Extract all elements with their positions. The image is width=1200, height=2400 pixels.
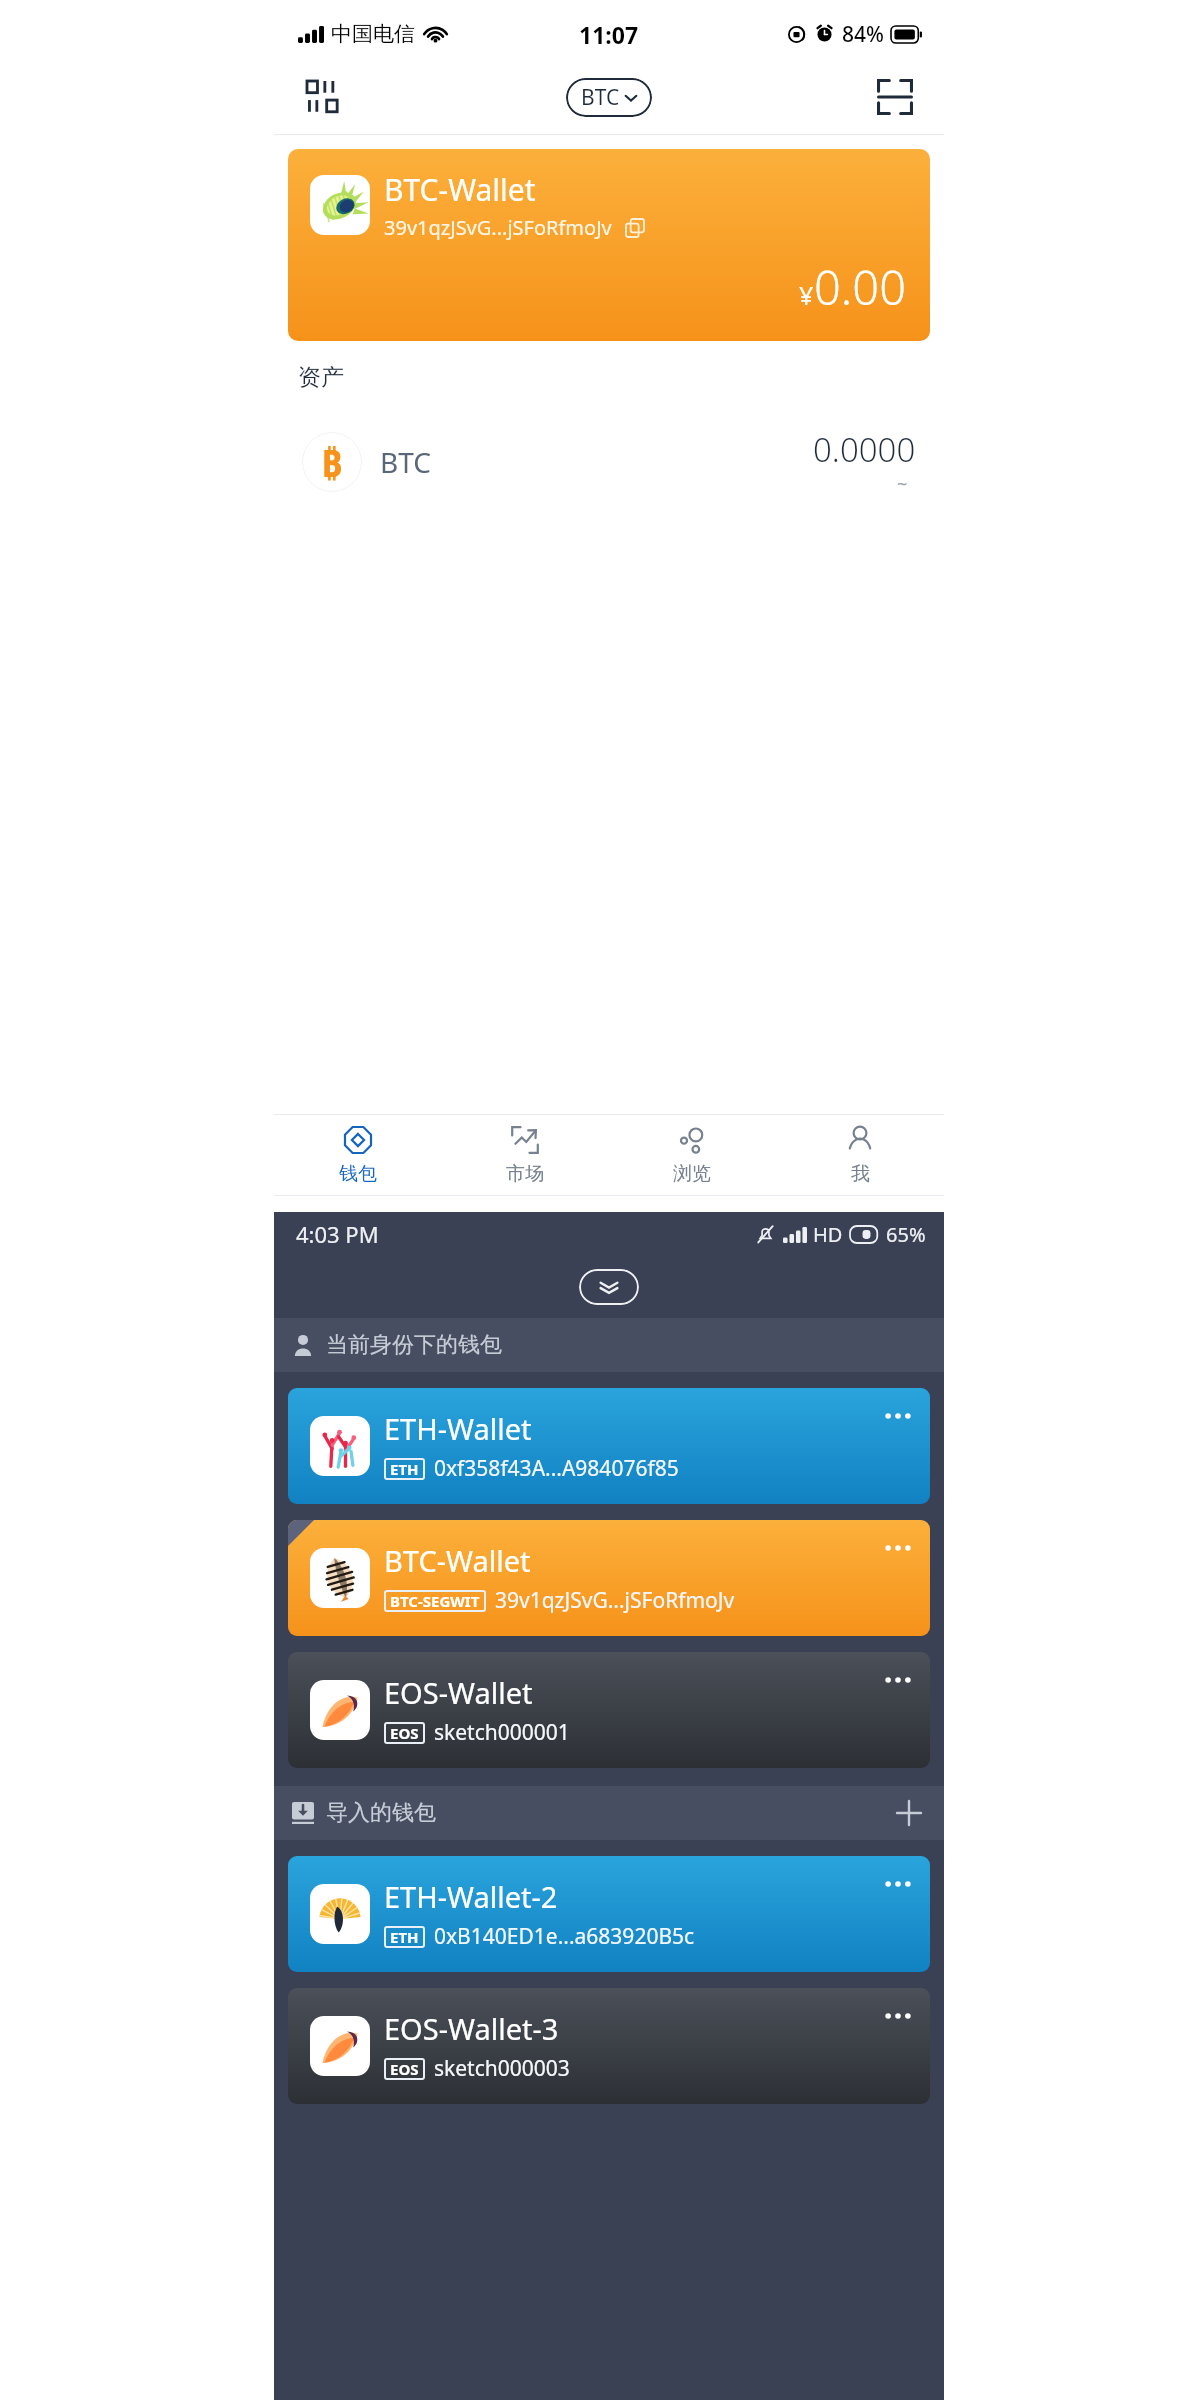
- staticText: BTC: [581, 83, 620, 112]
- staticText: ¥: [799, 278, 814, 312]
- staticText: ~: [897, 472, 908, 497]
- staticText: sketch000001: [434, 1718, 570, 1747]
- button[interactable]: EOS-Wallet: [288, 1652, 930, 1768]
- staticText: EOS: [390, 2059, 419, 2079]
- button[interactable]: More options: [876, 1526, 920, 1570]
- button[interactable]: Add wallet: [892, 1796, 926, 1830]
- button[interactable]: 当前身份下的钱包: [274, 1318, 944, 1372]
- button[interactable]: More options: [876, 1862, 920, 1906]
- staticText: 0xf358f43A...A984076f85: [434, 1454, 679, 1483]
- staticText: 导入的钱包: [326, 1799, 436, 1827]
- staticText: 84%: [842, 20, 884, 49]
- staticText: ETH-Wallet-2: [384, 1877, 558, 1916]
- staticText: BTC-Wallet: [384, 169, 536, 210]
- button[interactable]: 导入的钱包: [274, 1786, 944, 1840]
- button[interactable]: ETH-Wallet: [288, 1388, 930, 1504]
- button[interactable]: Scan QR code: [868, 70, 922, 124]
- staticText: 市场: [506, 1162, 544, 1186]
- staticText: 11:07: [579, 19, 639, 50]
- button[interactable]: 市场: [441, 1115, 608, 1195]
- staticText: BTC: [380, 443, 431, 481]
- button[interactable]: ₿: [274, 416, 944, 508]
- button[interactable]: More options: [876, 1658, 920, 1702]
- staticText: 资产: [298, 363, 344, 392]
- button[interactable]: Copy address: [622, 215, 648, 241]
- staticText: 钱包: [339, 1162, 377, 1186]
- staticText: EOS-Wallet-3: [384, 2009, 559, 2048]
- staticText: 中国电信: [331, 21, 415, 47]
- staticText: 39v1qzJSvG...jSFoRfmoJv: [495, 1586, 735, 1615]
- button[interactable]: BTC: [566, 78, 652, 117]
- staticText: 我: [851, 1162, 870, 1186]
- staticText: 浏览: [673, 1162, 711, 1186]
- staticText: BTC-SEGWIT: [390, 1591, 480, 1611]
- button[interactable]: More options: [876, 1394, 920, 1438]
- button[interactable]: EOS-Wallet-3: [288, 1988, 930, 2104]
- staticText: EOS-Wallet: [384, 1673, 533, 1712]
- staticText: ETH: [390, 1927, 419, 1947]
- staticText: HD: [813, 1221, 843, 1248]
- button[interactable]: 浏览: [608, 1115, 776, 1195]
- button[interactable]: BTC-Wallet: [288, 149, 930, 341]
- staticText: 0.0000: [813, 427, 916, 472]
- staticText: 0xB140ED1e...a683920B5c: [434, 1922, 695, 1951]
- button[interactable]: BTC-Wallet: [288, 1520, 930, 1636]
- button[interactable]: Menu: [296, 70, 350, 124]
- staticText: 65%: [886, 1221, 926, 1248]
- staticText: 39v1qzJSvG...jSFoRfmoJv: [384, 214, 612, 241]
- staticText: sketch000003: [434, 2054, 570, 2083]
- staticText: ETH-Wallet: [384, 1409, 532, 1448]
- button[interactable]: ETH-Wallet-2: [288, 1856, 930, 1972]
- staticText: BTC-Wallet: [384, 1541, 531, 1580]
- button[interactable]: Collapse: [579, 1269, 639, 1305]
- button[interactable]: 我: [776, 1115, 944, 1195]
- button[interactable]: More options: [876, 1994, 920, 2038]
- staticText: 4:03 PM: [296, 1219, 379, 1249]
- staticText: 0.00: [814, 255, 906, 319]
- staticText: 当前身份下的钱包: [326, 1331, 502, 1359]
- staticText: ₿: [321, 437, 343, 487]
- staticText: EOS: [390, 1723, 419, 1743]
- staticText: ETH: [390, 1459, 419, 1479]
- button[interactable]: 钱包: [274, 1115, 441, 1195]
